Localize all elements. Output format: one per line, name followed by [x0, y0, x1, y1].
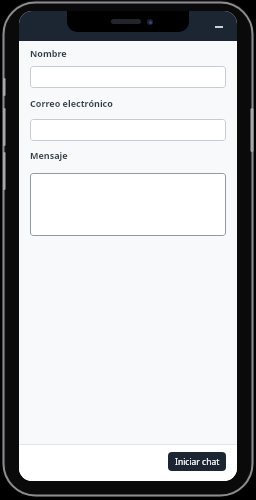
button[interactable]: [30, 173, 226, 236]
staticText: Nombre: [30, 47, 67, 59]
button[interactable]: [30, 119, 226, 141]
staticText: Mensaje: [30, 149, 68, 161]
button[interactable]: [30, 66, 226, 88]
button[interactable]: Iniciar chat: [168, 452, 226, 471]
staticText: Correo electrónico: [30, 97, 113, 109]
button[interactable]: [211, 21, 227, 33]
staticText: Iniciar chat: [175, 456, 220, 468]
